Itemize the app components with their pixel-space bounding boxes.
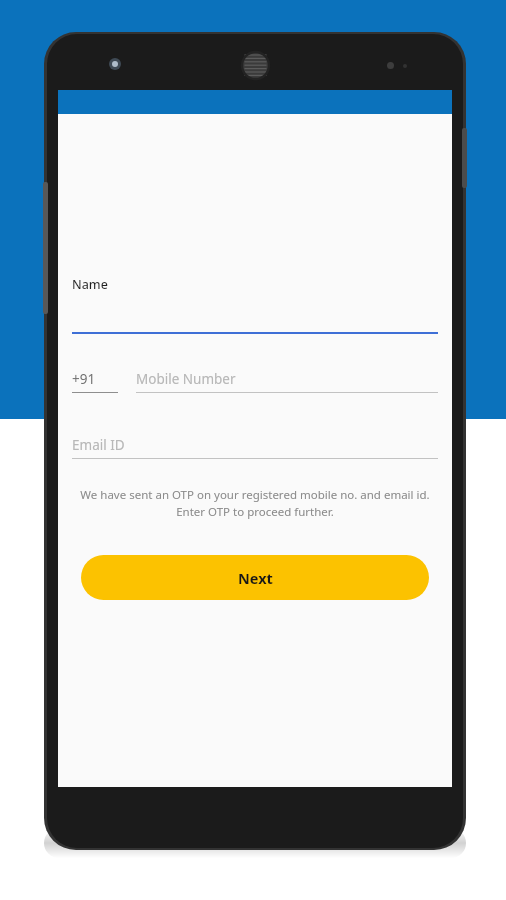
button[interactable]: Email ID <box>72 431 438 459</box>
button[interactable]: Mobile Number <box>136 365 438 393</box>
staticText: Mobile Number <box>136 370 236 388</box>
button[interactable]: Name <box>72 276 438 334</box>
staticText: Email ID <box>72 436 125 454</box>
staticText: Name <box>72 276 108 293</box>
button[interactable]: Next <box>81 555 429 600</box>
staticText: +91 <box>72 370 96 388</box>
staticText: We have sent an OTP on your registered m… <box>76 487 434 519</box>
staticText: Next <box>238 568 273 588</box>
button[interactable]: +91 <box>72 365 118 393</box>
